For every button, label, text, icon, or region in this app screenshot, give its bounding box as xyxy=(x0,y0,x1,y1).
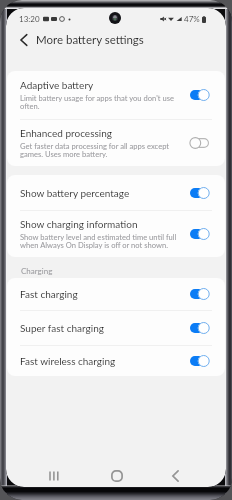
staticText: Super fast charging xyxy=(20,322,104,334)
staticText: More battery settings xyxy=(36,33,144,47)
button[interactable]: Back xyxy=(14,30,34,50)
button[interactable]: Home xyxy=(102,465,131,487)
staticText: Show charging information xyxy=(20,218,138,230)
button[interactable]: Switch on xyxy=(190,355,209,367)
button[interactable]: Recent apps xyxy=(39,465,68,487)
button[interactable]: Switch on xyxy=(190,288,209,300)
button[interactable]: Switch off xyxy=(190,137,209,149)
button[interactable]: Switch on xyxy=(190,322,209,334)
staticText: Fast charging xyxy=(20,288,78,300)
staticText: Adaptive battery xyxy=(20,79,94,91)
button[interactable]: Back xyxy=(161,465,190,487)
staticText: Limit battery usage for apps that you do… xyxy=(20,93,184,111)
button[interactable]: Enhanced processing xyxy=(7,120,225,166)
staticText: Show battery percentage xyxy=(20,187,130,199)
button[interactable]: Fast charging xyxy=(7,278,225,310)
staticText: Show battery level and estimated time un… xyxy=(20,232,184,250)
staticText: Charging xyxy=(21,266,53,276)
button[interactable]: Show charging information xyxy=(7,211,225,257)
button[interactable]: Switch on xyxy=(190,228,209,240)
button[interactable]: Super fast charging xyxy=(7,311,225,345)
button[interactable]: Fast wireless charging xyxy=(7,346,225,376)
button[interactable]: Show battery percentage xyxy=(7,175,225,210)
staticText: Enhanced processing xyxy=(20,127,112,139)
staticText: 13:20 xyxy=(19,14,40,24)
button[interactable]: Adaptive battery xyxy=(7,71,225,119)
button[interactable]: Switch on xyxy=(190,89,209,101)
button[interactable]: Switch on xyxy=(190,187,209,199)
staticText: Get faster data processing for all apps … xyxy=(20,141,184,159)
staticText: Fast wireless charging xyxy=(20,355,116,367)
staticText: 47% xyxy=(184,14,200,24)
